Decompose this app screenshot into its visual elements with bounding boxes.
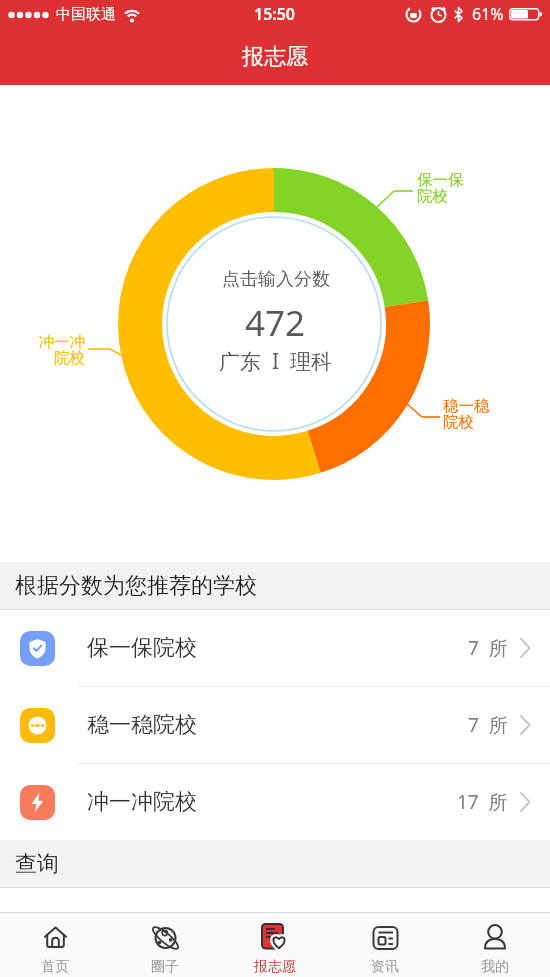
button[interactable]: 点击输入分数	[0, 85, 550, 562]
button[interactable]: 报志愿	[220, 913, 330, 977]
staticText: 冲一冲院校	[87, 788, 197, 816]
staticText: 61%	[472, 3, 504, 25]
staticText: 15:50	[254, 3, 296, 25]
button[interactable]: 我的	[440, 913, 550, 977]
staticText: 稳一稳院校	[87, 711, 197, 739]
staticText: 保一保院校	[87, 634, 197, 662]
staticText: 点击输入分数	[222, 268, 330, 291]
staticText: 稳一稳 院校	[443, 396, 490, 432]
staticText: 冲一冲 院校	[5, 332, 85, 368]
staticText: 报志愿	[254, 958, 296, 976]
staticText: 广东 I 理科	[219, 347, 332, 376]
staticText: 报志愿	[242, 43, 308, 71]
staticText: 查询	[15, 850, 59, 878]
staticText: 472	[245, 299, 306, 347]
button[interactable]: 首页	[0, 913, 110, 977]
staticText: 首页	[41, 958, 69, 976]
staticText: 7 所	[468, 635, 508, 661]
staticText: 保一保 院校	[417, 170, 464, 206]
button[interactable]: 稳一稳院校	[0, 687, 550, 763]
button[interactable]: 冲一冲院校	[0, 764, 550, 840]
staticText: 我的	[481, 958, 509, 976]
button[interactable]: 资讯	[330, 913, 440, 977]
button[interactable]: 圈子	[110, 913, 220, 977]
staticText: 中国联通	[56, 5, 116, 24]
staticText: 资讯	[371, 958, 399, 976]
staticText: 17 所	[457, 789, 508, 815]
staticText: 根据分数为您推荐的学校	[15, 572, 257, 600]
staticText: 7 所	[468, 712, 508, 738]
staticText: 圈子	[151, 958, 179, 976]
button[interactable]: 保一保院校	[0, 610, 550, 686]
